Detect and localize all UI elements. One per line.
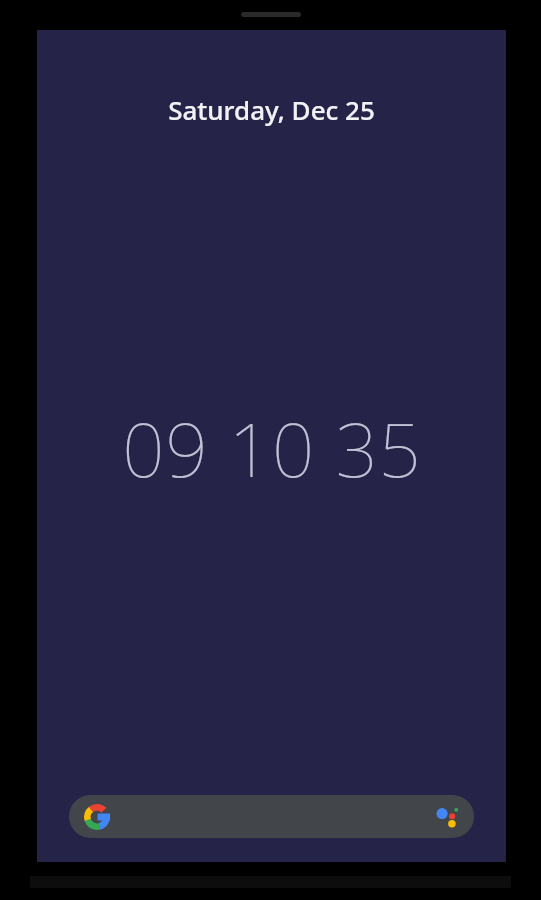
- button[interactable]: Saturday, Dec 25: [156, 88, 387, 131]
- button[interactable]: 09 10 35: [106, 392, 438, 505]
- staticText: Saturday, Dec 25: [168, 92, 375, 127]
- staticText: 09 10 35: [122, 398, 422, 499]
- button[interactable]: Google search: [69, 795, 474, 838]
